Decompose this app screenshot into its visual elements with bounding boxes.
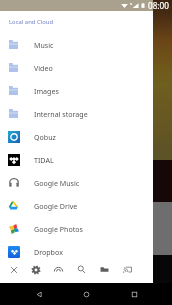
staticText: 08:00 <box>148 0 169 11</box>
staticText: Google Photos <box>34 224 84 234</box>
staticText: TIDAL <box>34 155 54 165</box>
button[interactable]: Recents <box>125 285 143 303</box>
staticText: Google Music <box>34 178 80 188</box>
button[interactable]: TIDAL <box>0 148 153 171</box>
button[interactable]: Folder <box>92 263 116 276</box>
staticText: Google Drive <box>34 201 78 211</box>
button[interactable]: Search <box>71 263 92 276</box>
staticText: Local and Cloud <box>9 18 54 26</box>
button[interactable]: Google Photos <box>0 217 153 240</box>
button[interactable]: Video <box>0 56 153 79</box>
button[interactable]: Settings <box>27 263 45 276</box>
button[interactable]: Images <box>0 79 153 102</box>
staticText: Dropbox <box>34 247 63 257</box>
button[interactable]: Cast <box>116 263 138 276</box>
button[interactable]: Internal storage <box>0 102 153 125</box>
staticText: Music <box>34 40 54 50</box>
button[interactable]: Google Drive <box>0 194 153 217</box>
button[interactable]: Google Music <box>0 171 153 194</box>
button[interactable]: Dropbox <box>0 240 153 263</box>
button[interactable]: Qobuz <box>0 125 153 148</box>
staticText: Images <box>34 86 59 96</box>
staticText: Video <box>34 63 53 73</box>
staticText: Internal storage <box>34 109 88 119</box>
button[interactable]: Home <box>77 285 95 303</box>
button[interactable]: Equalizer <box>45 263 71 276</box>
button[interactable]: Music <box>0 33 153 56</box>
button[interactable]: Back <box>30 285 48 303</box>
button[interactable]: Close <box>0 263 27 276</box>
staticText: Qobuz <box>34 132 56 142</box>
